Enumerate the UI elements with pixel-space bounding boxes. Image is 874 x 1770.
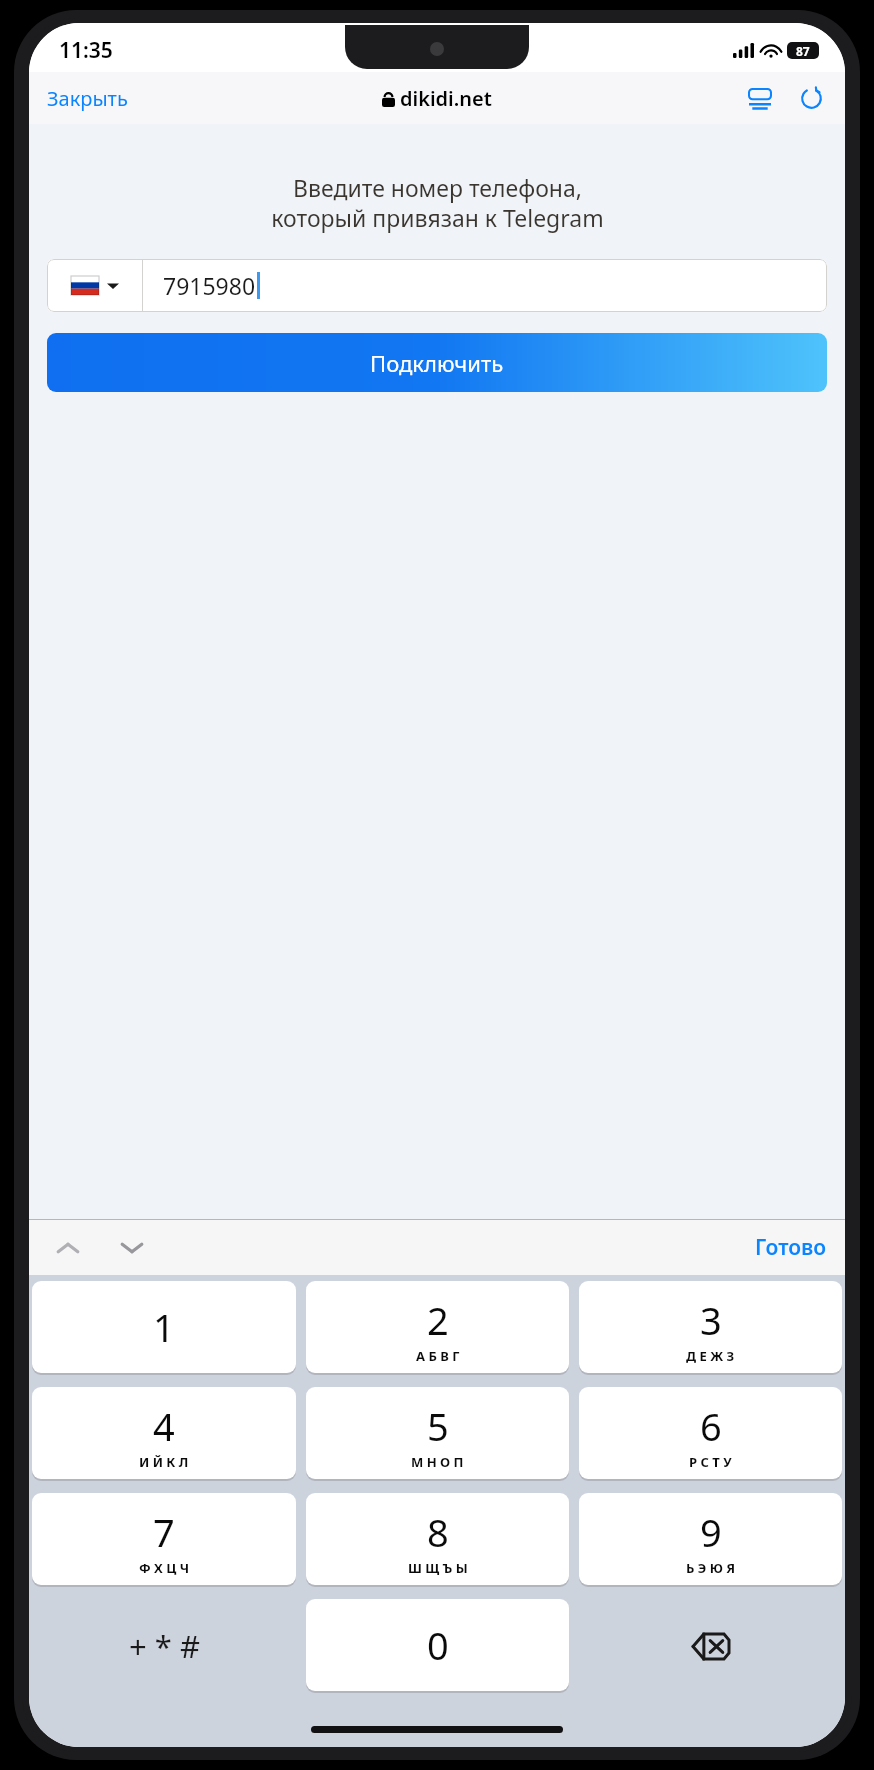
- staticText: И Й К Л: [139, 1453, 189, 1471]
- staticText: Подключить: [370, 348, 504, 378]
- staticText: 6: [700, 1400, 722, 1452]
- staticText: 1: [153, 1301, 175, 1353]
- staticText: Д Е Ж З: [686, 1347, 735, 1365]
- button[interactable]: dikidi.net: [374, 81, 500, 116]
- button[interactable]: 4: [32, 1387, 296, 1481]
- staticText: + * #: [129, 1625, 200, 1667]
- button[interactable]: Previous field: [43, 1231, 93, 1265]
- staticText: Р С Т У: [689, 1453, 732, 1471]
- button[interactable]: 7915980: [143, 259, 827, 312]
- button[interactable]: Symbols plus star hash: [32, 1599, 296, 1693]
- button[interactable]: 6: [579, 1387, 842, 1481]
- staticText: 11:35: [59, 36, 113, 65]
- button[interactable]: 2: [306, 1281, 569, 1375]
- staticText: 7915980: [163, 270, 256, 301]
- staticText: 87: [796, 43, 810, 59]
- staticText: Готово: [755, 1233, 827, 1262]
- staticText: 0: [427, 1619, 449, 1671]
- button[interactable]: Готово: [737, 1225, 845, 1270]
- button[interactable]: Подключить: [47, 333, 827, 392]
- button[interactable]: 7: [32, 1493, 296, 1587]
- staticText: 3: [700, 1294, 722, 1346]
- staticText: Ш Щ Ъ Ы: [408, 1559, 468, 1577]
- button[interactable]: 5: [306, 1387, 569, 1481]
- button[interactable]: 3: [579, 1281, 842, 1375]
- staticText: 8: [427, 1506, 449, 1558]
- staticText: 5: [427, 1400, 449, 1452]
- staticText: 4: [153, 1400, 175, 1452]
- staticText: Закрыть: [47, 85, 128, 112]
- button[interactable]: 0: [306, 1599, 569, 1693]
- button[interactable]: Reload: [792, 79, 831, 118]
- staticText: Введите номер телефона, который привязан…: [271, 172, 604, 234]
- staticText: Ф Х Ц Ч: [139, 1559, 189, 1577]
- button[interactable]: 9: [579, 1493, 842, 1587]
- staticText: А Б В Г: [416, 1347, 460, 1365]
- button[interactable]: Reader view: [740, 80, 780, 118]
- button[interactable]: Delete: [579, 1599, 842, 1693]
- staticText: 7: [153, 1506, 175, 1558]
- button[interactable]: 8: [306, 1493, 569, 1587]
- staticText: 9: [700, 1506, 722, 1558]
- button[interactable]: Закрыть: [29, 79, 146, 118]
- button[interactable]: 1: [32, 1281, 296, 1375]
- staticText: М Н О П: [411, 1453, 464, 1471]
- staticText: 2: [427, 1294, 449, 1346]
- staticText: dikidi.net: [400, 85, 492, 112]
- button[interactable]: Select country code: [47, 259, 142, 312]
- button[interactable]: Next field: [107, 1231, 157, 1265]
- staticText: Ь Э Ю Я: [686, 1559, 736, 1577]
